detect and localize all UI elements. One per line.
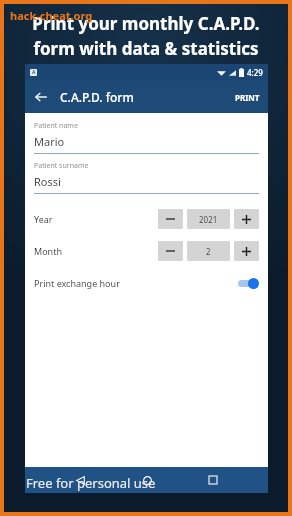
button[interactable]: Decrease Month	[158, 241, 183, 261]
button[interactable]: Decrease Year	[158, 209, 183, 229]
staticText: hack-cheat.org	[10, 8, 93, 23]
staticText: Year	[34, 213, 53, 225]
button[interactable]: Back	[25, 81, 57, 113]
button[interactable]: 2	[187, 241, 230, 261]
button[interactable]: Patient surname	[34, 161, 259, 194]
staticText: 2021	[199, 214, 218, 225]
staticText: PRINT	[235, 92, 260, 103]
button[interactable]: 2021	[187, 209, 230, 229]
button[interactable]: Home	[135, 468, 159, 492]
button[interactable]: Back	[68, 468, 92, 492]
staticText: Print your monthly C.A.P.D.	[32, 12, 260, 35]
button[interactable]: Increase Month	[234, 241, 259, 261]
staticText: C.A.P.D. form	[60, 89, 134, 105]
staticText: Print exchange hour	[34, 277, 120, 289]
staticText: form with data & statistics	[33, 37, 259, 60]
staticText: Mario	[34, 134, 65, 149]
staticText: Patient name	[34, 121, 78, 131]
staticText: A	[32, 69, 36, 76]
staticText: Free for personal use	[26, 474, 156, 492]
button[interactable]: Increase Year	[234, 209, 259, 229]
button[interactable]: Print exchange hour	[34, 270, 259, 296]
button[interactable]: Patient name	[34, 121, 259, 154]
staticText: 4:29	[247, 67, 263, 78]
staticText: Month	[34, 245, 62, 257]
staticText: Rossi	[34, 174, 61, 189]
button[interactable]: Recent apps	[201, 468, 225, 492]
staticText: 2	[206, 246, 211, 257]
staticText: Patient surname	[34, 161, 89, 171]
button[interactable]: PRINT	[227, 86, 268, 109]
